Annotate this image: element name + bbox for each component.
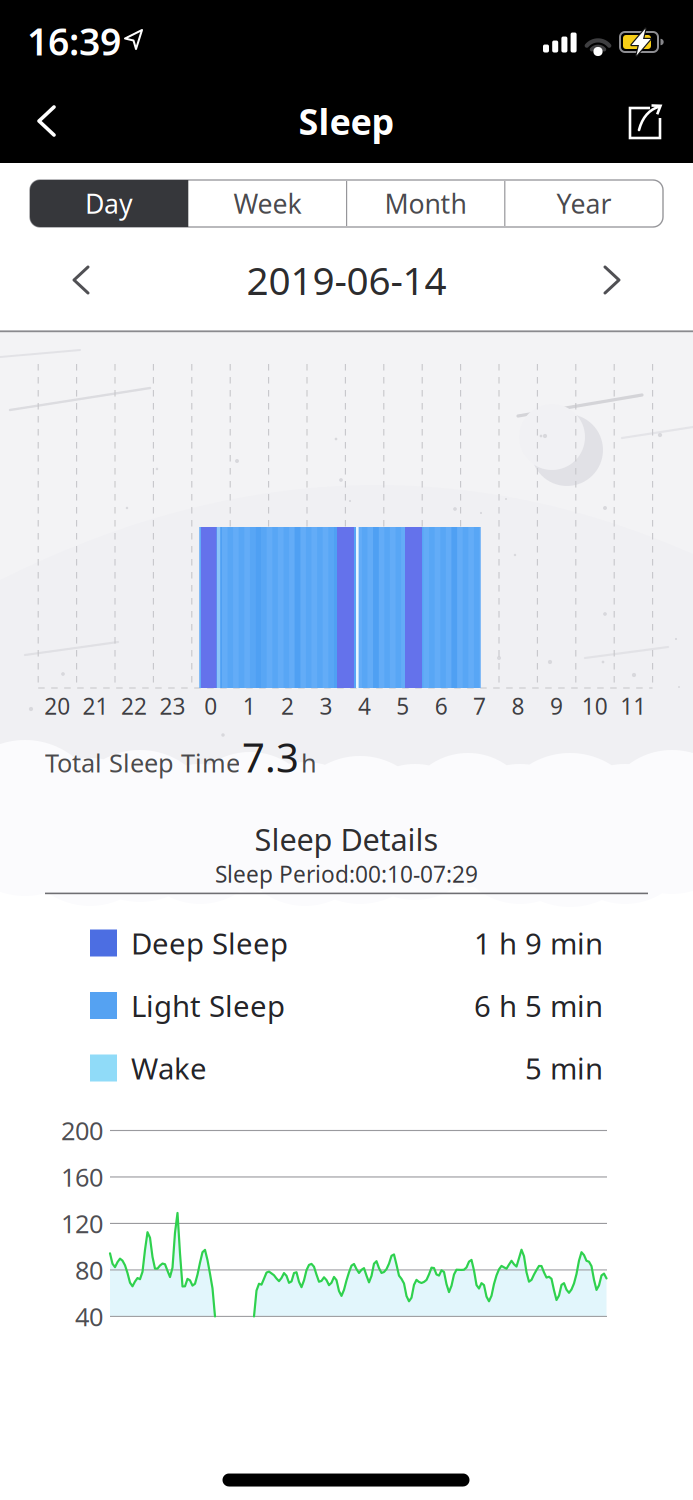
- staticText: Year: [556, 186, 611, 221]
- staticText: 16:39: [27, 16, 121, 66]
- staticText: Month: [385, 186, 467, 221]
- staticText: Week: [233, 186, 301, 221]
- staticText: 5: [396, 691, 409, 721]
- staticText: 3: [319, 691, 332, 721]
- staticText: 200: [61, 1114, 103, 1147]
- button[interactable]: Day: [30, 180, 188, 227]
- staticText: 1 h 9 min: [474, 923, 603, 962]
- staticText: Sleep: [298, 97, 394, 145]
- staticText: 9: [550, 691, 563, 721]
- staticText: Total Sleep Time: [45, 746, 240, 779]
- staticText: Light Sleep: [131, 986, 285, 1025]
- button[interactable]: Share: [623, 99, 667, 143]
- staticText: 7: [473, 691, 486, 721]
- staticText: 21: [83, 691, 109, 721]
- staticText: 6: [435, 691, 448, 721]
- staticText: Sleep Details: [254, 819, 438, 859]
- staticText: 1: [243, 691, 256, 721]
- button[interactable]: Next day: [591, 261, 629, 299]
- button[interactable]: Week: [188, 180, 346, 227]
- button[interactable]: Back: [26, 99, 70, 143]
- staticText: 5 min: [525, 1048, 603, 1087]
- staticText: 0: [204, 691, 217, 721]
- staticText: 4: [358, 691, 371, 721]
- button[interactable]: Year: [505, 180, 663, 227]
- button[interactable]: Month: [347, 180, 505, 227]
- staticText: Deep Sleep: [131, 923, 288, 962]
- button[interactable]: Previous day: [64, 261, 102, 299]
- staticText: 23: [159, 691, 185, 721]
- staticText: 8: [511, 691, 524, 721]
- staticText: Wake: [131, 1048, 207, 1087]
- staticText: h: [301, 746, 317, 779]
- staticText: 7.3: [242, 730, 299, 783]
- staticText: 22: [121, 691, 147, 721]
- staticText: 2019-06-14: [246, 254, 446, 306]
- staticText: Sleep Period:00:10-07:29: [215, 859, 478, 889]
- staticText: 2: [281, 691, 294, 721]
- staticText: 160: [61, 1160, 103, 1194]
- staticText: 6 h 5 min: [474, 986, 603, 1025]
- staticText: 40: [75, 1300, 103, 1333]
- staticText: 10: [582, 691, 608, 721]
- staticText: 11: [620, 691, 646, 721]
- staticText: 120: [61, 1207, 103, 1240]
- staticText: 80: [75, 1253, 103, 1287]
- staticText: 20: [44, 691, 70, 721]
- staticText: Day: [85, 186, 133, 221]
